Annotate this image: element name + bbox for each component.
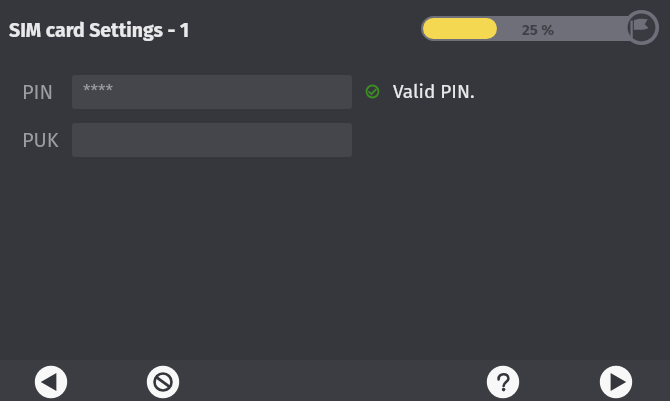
button[interactable]: PIN bbox=[22, 75, 54, 109]
button[interactable]: Back bbox=[35, 366, 67, 398]
staticText: Valid PIN. bbox=[393, 80, 475, 103]
button[interactable]: Help bbox=[487, 366, 519, 398]
button[interactable]: Finish step bbox=[623, 9, 660, 46]
button[interactable]: PUK bbox=[22, 123, 59, 157]
button[interactable]: Next bbox=[600, 366, 632, 398]
staticText: SIM card Settings - 1 bbox=[9, 19, 190, 42]
button[interactable]: SIM card Settings - 1 bbox=[9, 19, 190, 42]
staticText: PIN bbox=[22, 80, 54, 104]
button[interactable]: **** bbox=[72, 75, 352, 109]
staticText: **** bbox=[83, 81, 114, 101]
staticText: 25 % bbox=[522, 21, 555, 39]
staticText: PUK bbox=[22, 128, 59, 152]
button[interactable]: Valid PIN. bbox=[364, 80, 475, 103]
button[interactable]: 25 % bbox=[421, 16, 647, 41]
button[interactable]: Cancel bbox=[147, 366, 179, 398]
